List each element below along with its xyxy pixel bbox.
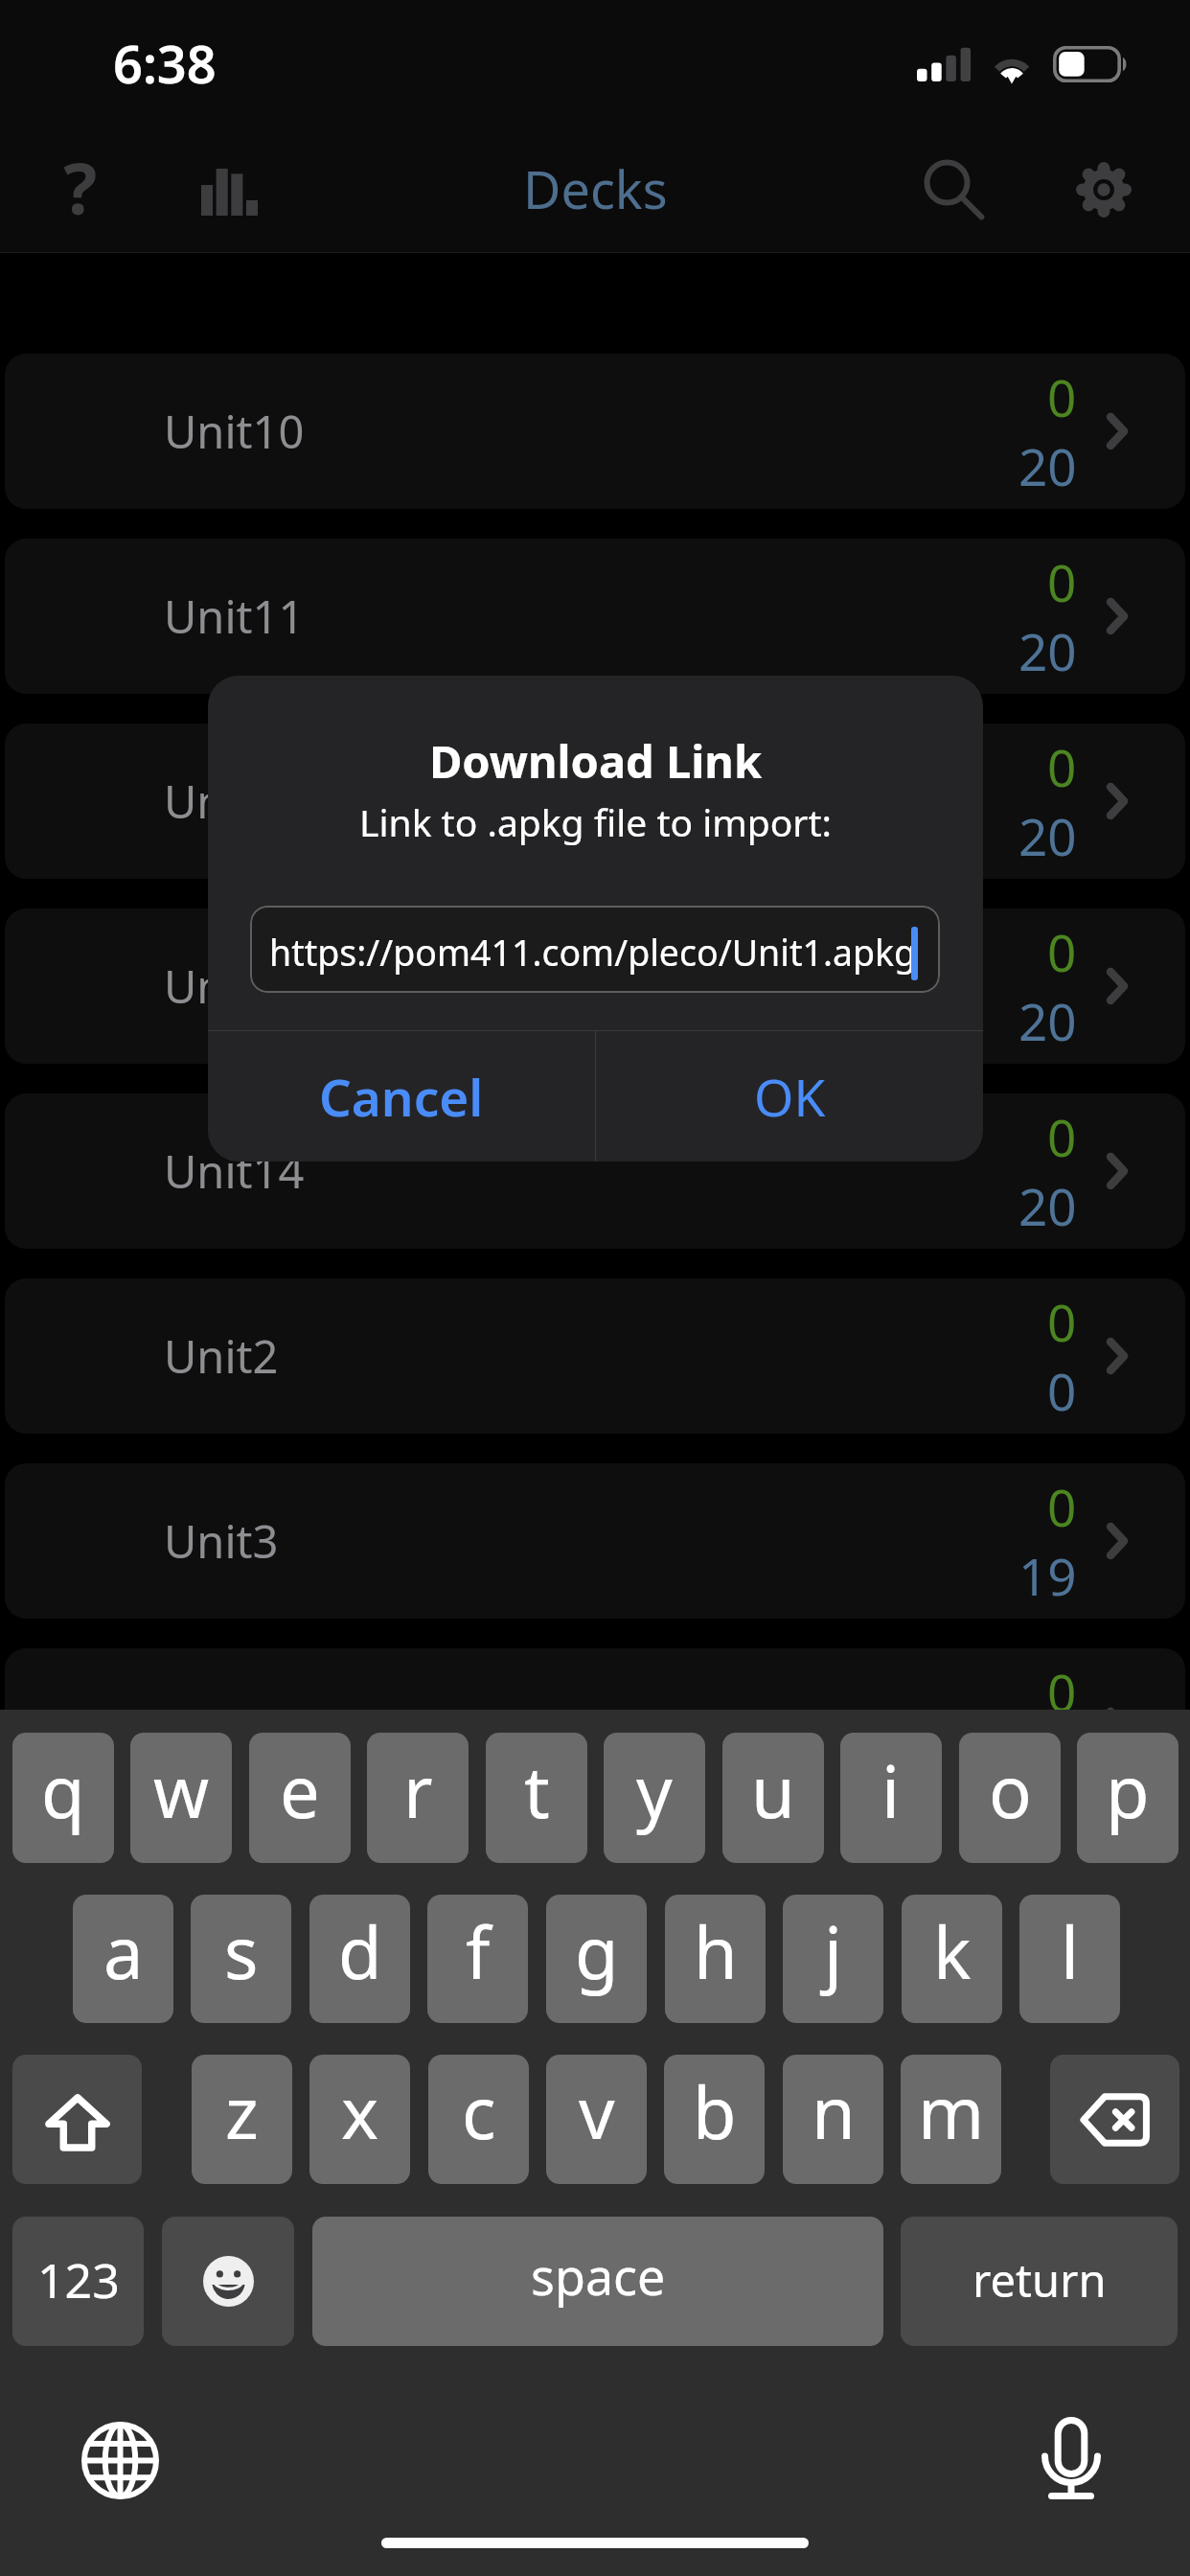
staticText: 0 (1047, 732, 1077, 801)
button[interactable]: Emoji (162, 2217, 294, 2346)
staticText: Unit13 (164, 955, 305, 1017)
button[interactable]: f (427, 1895, 528, 2023)
staticText: l (1061, 1903, 1080, 2000)
button[interactable]: c (428, 2055, 529, 2184)
staticText: Link to .apkg file to import: (208, 796, 983, 847)
button[interactable]: Cancel (208, 1031, 595, 1161)
staticText: x (341, 2063, 379, 2160)
button[interactable]: Unit11 (5, 539, 1185, 694)
staticText: 0 (1047, 1657, 1077, 1726)
button[interactable]: y (604, 1733, 705, 1863)
button[interactable]: n (783, 2055, 883, 2184)
staticText: 0 (1047, 362, 1077, 431)
staticText: 0 (1047, 547, 1077, 616)
button[interactable]: q (12, 1733, 114, 1863)
staticText: Unit10 (164, 401, 305, 462)
staticText: 0 (1047, 1287, 1077, 1356)
staticText: return (973, 2249, 1107, 2311)
staticText: Cancel (319, 1062, 484, 1131)
button[interactable]: Settings (1056, 140, 1152, 240)
staticText: 20 (1018, 801, 1077, 870)
button[interactable]: Numbers (12, 2217, 144, 2346)
button[interactable]: z (192, 2055, 292, 2184)
staticText: w (153, 1742, 210, 1839)
staticText: OK (754, 1062, 826, 1131)
button[interactable]: k (902, 1895, 1002, 2023)
button[interactable]: Unit10 (5, 354, 1185, 509)
staticText: Unit3 (164, 1510, 279, 1572)
button[interactable]: Unit2 (5, 1278, 1185, 1434)
button[interactable]: Unit4 (5, 1648, 1185, 1804)
button[interactable]: b (664, 2055, 765, 2184)
button[interactable]: w (130, 1733, 232, 1863)
button[interactable]: space (312, 2217, 883, 2346)
staticText: j (824, 1903, 843, 2000)
staticText: m (918, 2063, 985, 2160)
staticText: 6:38 (113, 28, 217, 99)
staticText: y (636, 1742, 673, 1839)
button[interactable]: e (249, 1733, 351, 1863)
button[interactable]: s (191, 1895, 291, 2023)
button[interactable]: x (309, 2055, 410, 2184)
button[interactable]: a (73, 1895, 173, 2023)
staticText: u (751, 1742, 795, 1839)
staticText: c (462, 2063, 496, 2160)
button[interactable]: r (367, 1733, 469, 1863)
button[interactable]: j (783, 1895, 883, 2023)
staticText: 0 (1047, 1356, 1077, 1425)
button[interactable]: u (722, 1733, 824, 1863)
button[interactable]: Dictation (1026, 2413, 1116, 2503)
staticText: a (103, 1903, 144, 2000)
staticText: b (693, 2063, 737, 2160)
button[interactable]: Change keyboard (75, 2415, 165, 2505)
button[interactable]: Backspace (1050, 2055, 1179, 2184)
staticText: ? (63, 139, 98, 236)
button[interactable]: return (901, 2217, 1178, 2346)
button[interactable]: m (901, 2055, 1001, 2184)
staticText: k (933, 1903, 972, 2000)
staticText: o (989, 1742, 1032, 1839)
staticText: Download Link (208, 730, 983, 792)
staticText: 0 (1047, 1472, 1077, 1541)
staticText: q (41, 1742, 85, 1839)
staticText: Unit4 (164, 1695, 279, 1757)
button[interactable]: g (546, 1895, 647, 2023)
staticText: e (280, 1742, 320, 1839)
button[interactable]: Unit14 (5, 1093, 1185, 1249)
button[interactable]: OK (596, 1031, 983, 1161)
staticText: Unit14 (164, 1140, 305, 1202)
button[interactable]: p (1077, 1733, 1179, 1863)
staticText: 123 (37, 2247, 120, 2312)
staticText: Unit2 (164, 1325, 279, 1387)
staticText: 20 (1018, 1726, 1077, 1795)
button[interactable]: d (309, 1895, 410, 2023)
button[interactable]: Shift (12, 2055, 142, 2184)
staticText: z (225, 2063, 259, 2160)
button[interactable]: Statistics (181, 142, 277, 241)
staticText: 20 (1018, 616, 1077, 685)
button[interactable]: h (665, 1895, 766, 2023)
staticText: Unit11 (164, 586, 305, 647)
staticText: 0 (1047, 1102, 1077, 1171)
button[interactable]: Unit3 (5, 1463, 1185, 1619)
staticText: Decks (523, 153, 668, 224)
button[interactable]: t (486, 1733, 587, 1863)
staticText: space (531, 2242, 666, 2310)
button[interactable]: i (840, 1733, 942, 1863)
staticText: 0 (1047, 917, 1077, 986)
staticText: 19 (1018, 1541, 1077, 1610)
button[interactable]: o (959, 1733, 1061, 1863)
staticText: Unit12 (164, 770, 305, 832)
staticText: r (403, 1742, 433, 1839)
staticText: https://pom411.com/pleco/Unit1.apkg (269, 928, 917, 977)
staticText: p (1106, 1742, 1150, 1839)
button[interactable]: Search (905, 140, 1001, 240)
button[interactable]: Unit12 (5, 724, 1185, 879)
button[interactable]: v (546, 2055, 647, 2184)
staticText: 20 (1018, 431, 1077, 500)
button[interactable]: Help (33, 139, 128, 239)
staticText: i (881, 1742, 901, 1839)
button[interactable]: Unit13 (5, 908, 1185, 1064)
button[interactable]: l (1019, 1895, 1120, 2023)
button[interactable]: https://pom411.com/pleco/Unit1.apkg (250, 906, 940, 993)
